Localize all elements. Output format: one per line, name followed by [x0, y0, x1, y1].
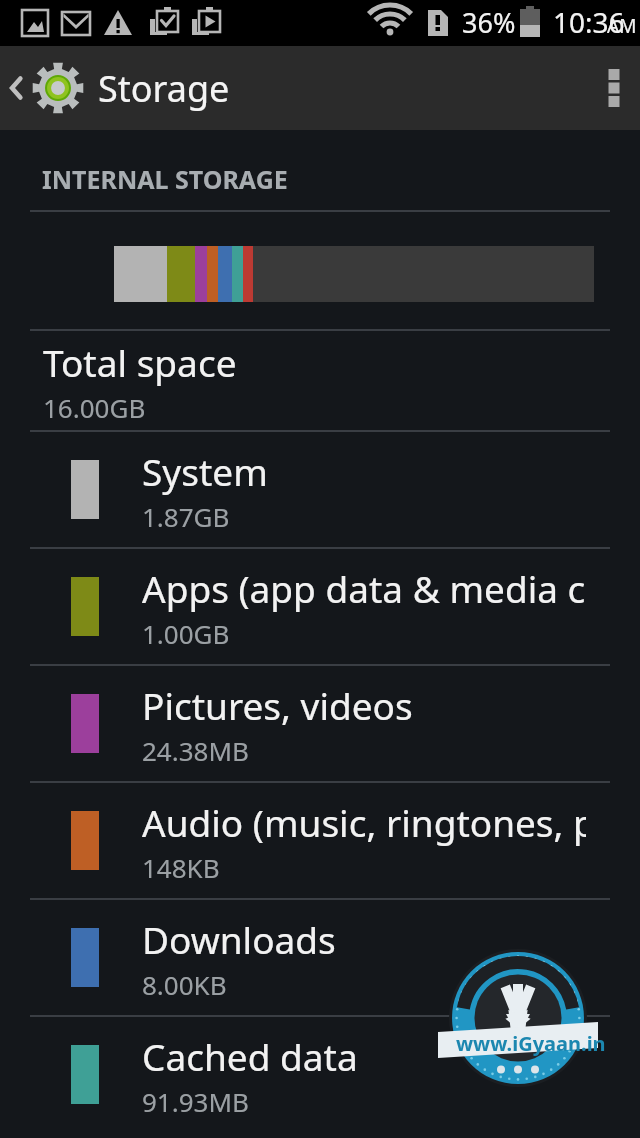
staticText: 148KB: [142, 850, 220, 885]
staticText: Downloads: [142, 914, 586, 964]
staticText: INTERNAL STORAGE: [42, 162, 288, 196]
staticText: Total space: [43, 337, 237, 387]
staticText: AM: [607, 13, 637, 39]
button[interactable]: Downloads: [0, 900, 640, 1015]
staticText: Apps (app data & media content): [142, 563, 586, 613]
staticText: 8.00KB: [142, 967, 227, 1002]
staticText: 91.93MB: [142, 1084, 249, 1119]
staticText: Storage: [98, 64, 230, 113]
button[interactable]: Navigate up: [0, 52, 240, 124]
staticText: 16.00GB: [43, 390, 146, 425]
staticText: 24.38MB: [142, 733, 249, 768]
button[interactable]: Apps (app data & media content): [0, 549, 640, 664]
button[interactable]: Total space: [0, 331, 640, 430]
button[interactable]: More options: [588, 55, 640, 121]
staticText: Pictures, videos: [142, 680, 586, 730]
button[interactable]: Pictures, videos: [0, 666, 640, 781]
staticText: 36%: [462, 4, 516, 41]
staticText: 1.00GB: [142, 616, 230, 651]
staticText: Cached data: [142, 1031, 586, 1081]
button[interactable]: Cached data: [0, 1017, 640, 1132]
staticText: Audio (music, ringtones, podcasts): [142, 797, 586, 847]
staticText: 1.87GB: [142, 499, 230, 534]
staticText: www.iGyaan.in: [456, 1030, 606, 1057]
staticText: 10:36: [553, 3, 625, 41]
button[interactable]: Audio (music, ringtones, podcasts): [0, 783, 640, 898]
staticText: System: [142, 446, 586, 496]
button[interactable]: System: [0, 432, 640, 547]
